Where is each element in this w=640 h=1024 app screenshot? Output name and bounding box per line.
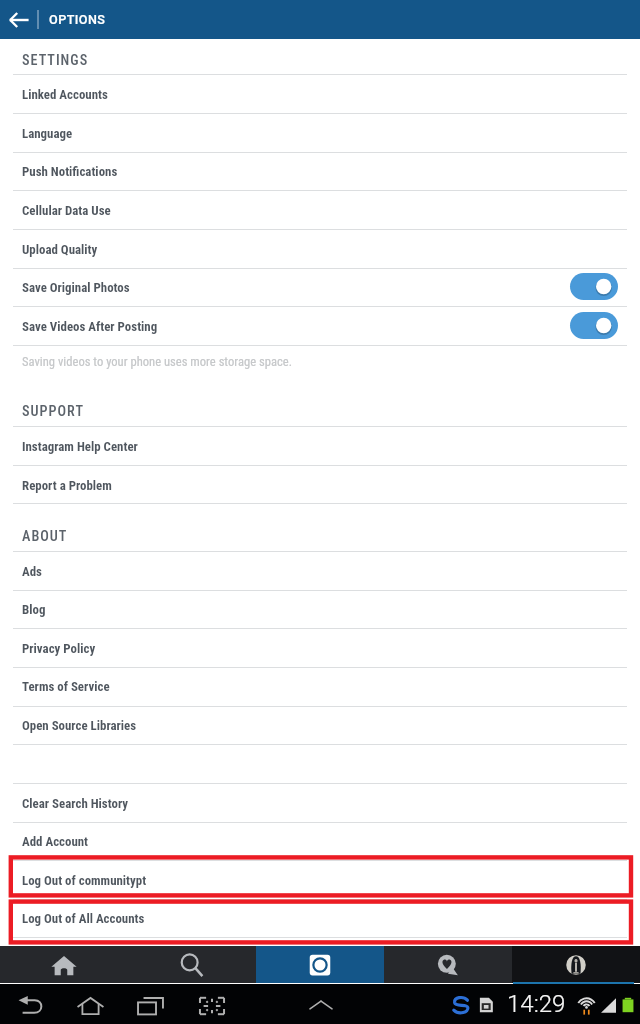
staticText: Privacy Policy [22,641,96,656]
button[interactable]: Recents [136,984,165,1024]
button[interactable]: Expand navigation [309,984,333,1024]
button[interactable]: Toggle Save Original Photos [570,273,618,300]
button[interactable]: Back [0,0,38,39]
button[interactable]: Signal [600,984,617,1024]
button[interactable]: Cellular Data Use [0,191,640,230]
staticText: ABOUT [22,528,68,545]
button[interactable]: Privacy Policy [0,629,640,668]
staticText: SUPPORT [22,403,85,420]
button[interactable]: Wi-Fi [577,984,596,1024]
button[interactable]: Clear Search History [0,784,640,823]
button[interactable]: Search [128,946,256,983]
staticText: Clear Search History [22,796,129,811]
staticText: Save Original Photos [22,280,130,295]
staticText: Blog [22,602,46,617]
button[interactable]: Terms of Service [0,667,640,706]
staticText: Language [22,126,73,141]
button[interactable]: Blog [0,590,640,629]
staticText: Report a Problem [22,478,112,493]
button[interactable]: Toggle Save Videos After Posting [570,312,618,339]
button[interactable]: Push Notifications [0,152,640,191]
staticText: Log Out of communitypt [22,873,147,888]
staticText: Instagram Help Center [22,439,138,454]
staticText: Saving videos to your phone uses more st… [22,354,292,369]
staticText: Upload Quality [22,242,98,257]
staticText: Terms of Service [22,679,110,694]
button[interactable]: Upload Quality [0,230,640,269]
staticText: Ads [22,564,42,579]
button[interactable]: Home [77,984,104,1024]
staticText: Log Out of All Accounts [22,911,145,926]
staticText: Save Videos After Posting [22,319,158,334]
staticText: OPTIONS [49,12,106,27]
staticText: Open Source Libraries [22,718,137,733]
staticText: Push Notifications [22,164,118,179]
button[interactable]: Battery [620,984,636,1024]
button[interactable]: Skype [451,984,471,1024]
button[interactable]: Screenshot [198,984,226,1024]
button[interactable]: Camera [256,946,384,983]
button[interactable]: Linked Accounts [0,75,640,114]
button[interactable]: Report a Problem [0,466,640,505]
button[interactable]: Ads [0,552,640,591]
button[interactable]: Save Original Photos [0,268,640,307]
staticText: Add Account [22,834,89,849]
staticText: Cellular Data Use [22,203,111,218]
button[interactable]: SIM card [477,984,495,1024]
button[interactable]: Home [0,946,128,983]
button[interactable]: Instagram Help Center [0,427,640,466]
staticText: Linked Accounts [22,87,108,102]
button[interactable]: Back [18,984,45,1024]
button[interactable]: Log Out of communitypt [0,861,640,900]
staticText: 14:29 [507,990,566,1018]
button[interactable]: Log Out of All Accounts [0,899,640,938]
button[interactable]: Language [0,114,640,153]
staticText: SETTINGS [22,52,89,69]
button[interactable]: Open Source Libraries [0,706,640,745]
button[interactable]: Add Account [0,822,640,861]
button[interactable]: Save Videos After Posting [0,307,640,346]
button[interactable]: Profile [512,946,640,983]
button[interactable]: Activity [384,946,512,983]
